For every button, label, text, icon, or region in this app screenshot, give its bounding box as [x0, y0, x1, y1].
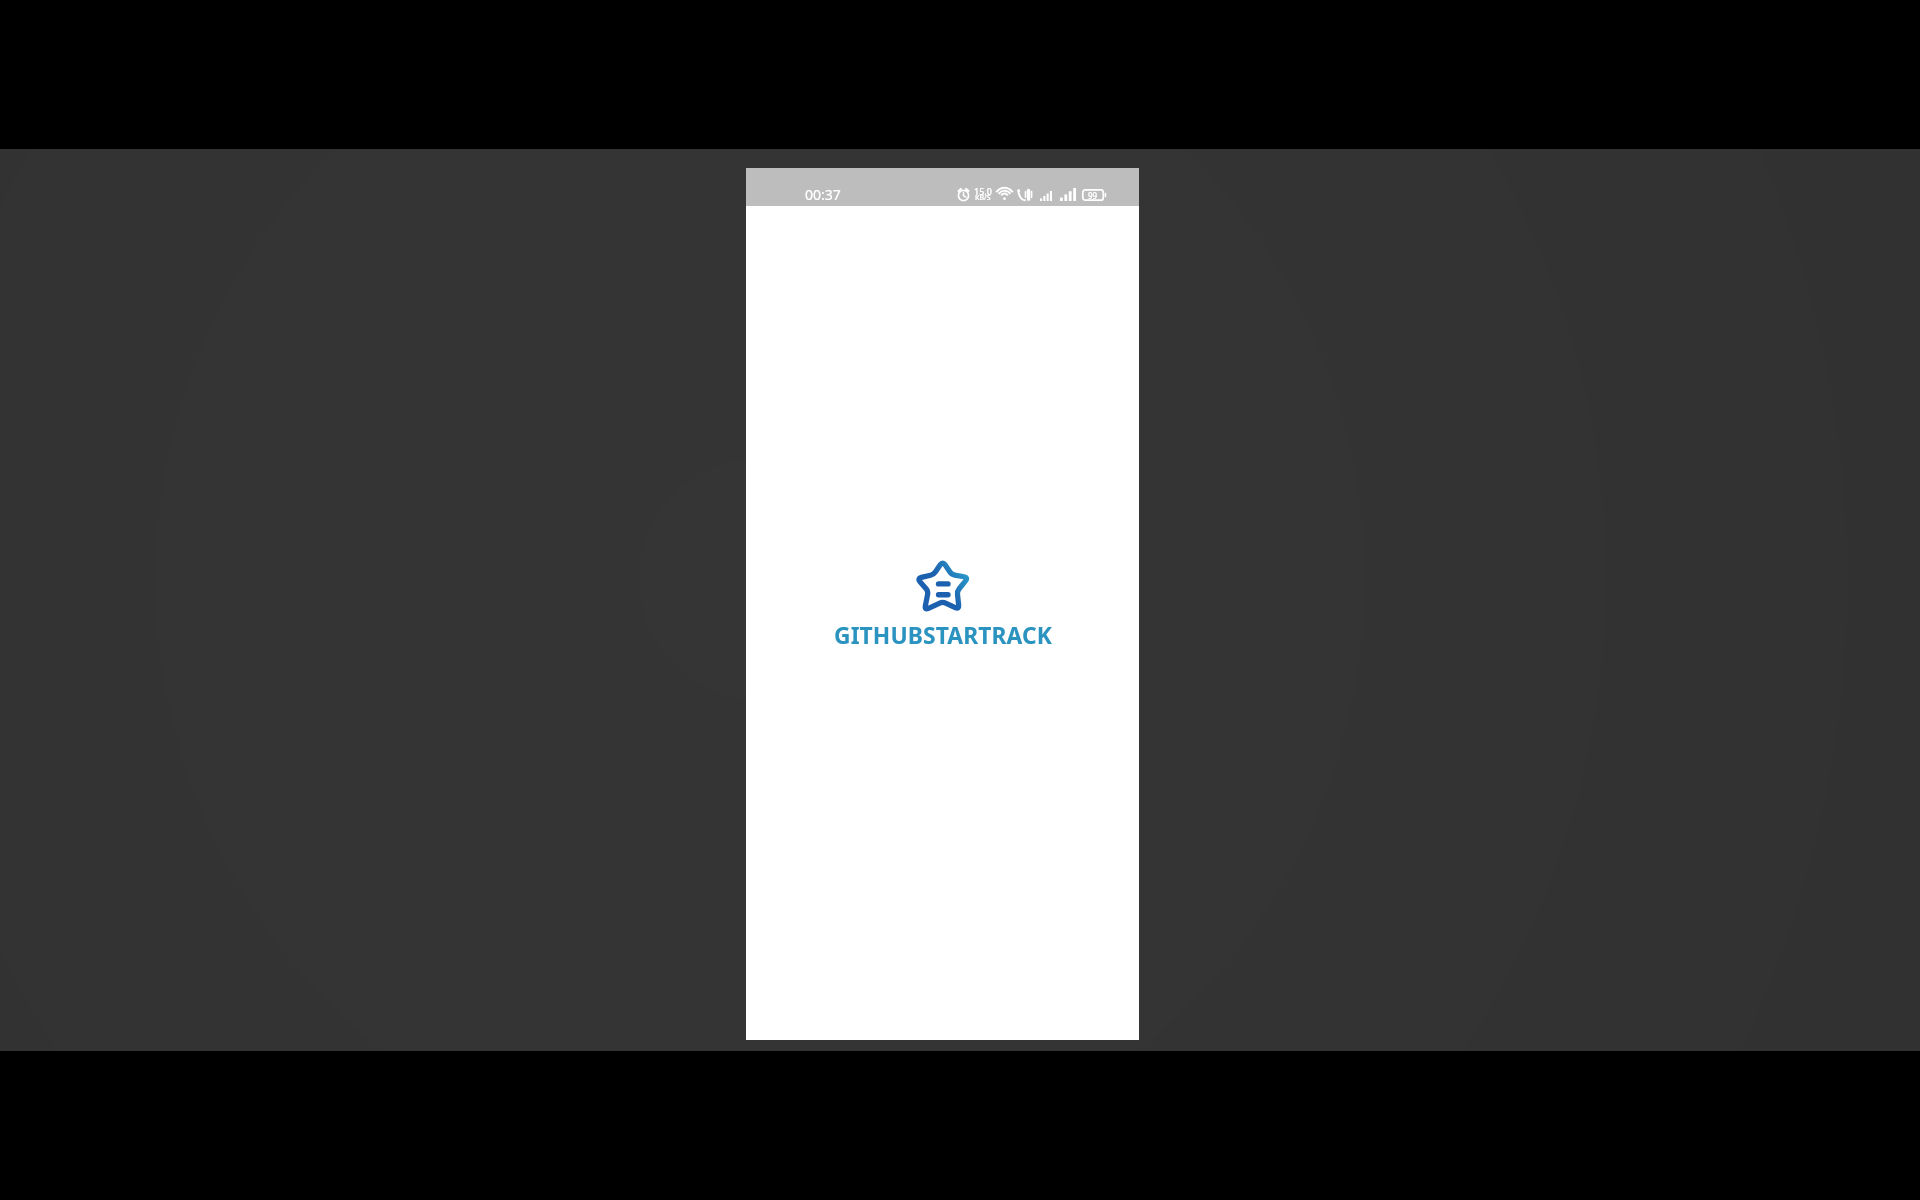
- staticText: KB/S: [975, 193, 991, 203]
- staticText: 99: [1088, 190, 1098, 201]
- other: GithubStarTrack logo: [914, 558, 972, 613]
- other: SIM 2 signal strength: [1060, 188, 1076, 201]
- other: Ringer set to vibrate: [1018, 188, 1035, 201]
- other: Battery 99 percent: [1082, 189, 1106, 201]
- other: Wi-Fi connected: [996, 187, 1013, 201]
- other: Alarm set: [957, 188, 970, 201]
- staticText: 00:37: [805, 185, 841, 204]
- button[interactable]: GithubStarTrack logo: [746, 558, 1139, 638]
- other: SIM 1 signal strength: [1040, 191, 1052, 201]
- staticText: 15.0: [974, 185, 992, 197]
- staticText: GITHUBSTARTRACK: [834, 620, 1052, 651]
